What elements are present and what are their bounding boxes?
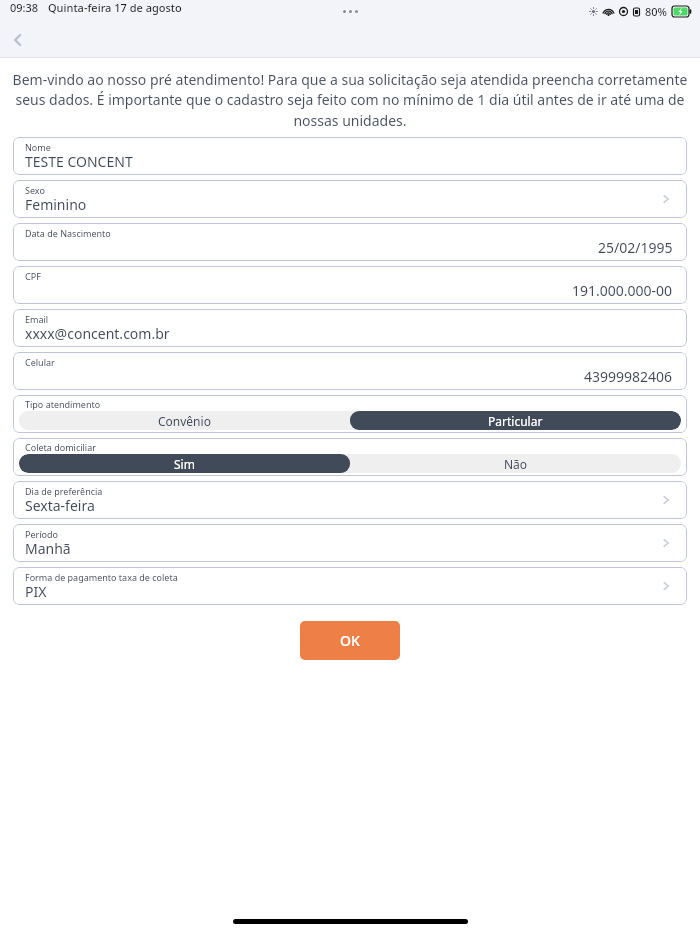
staticText: Celular [25,356,55,368]
staticText: Coleta domiciliar [25,441,96,453]
staticText: 191.000.000-00 [572,281,673,300]
staticText: Dia de preferência [25,485,103,497]
staticText: Nome [25,141,51,153]
staticText: 80% [645,4,667,19]
button[interactable]: Período [13,524,687,562]
staticText: Quinta-feira 17 de agosto [48,0,182,15]
staticText: Sim [174,456,195,472]
staticText: PIX [25,582,47,601]
button[interactable]: Nome [13,137,687,175]
staticText: Período [25,528,58,540]
staticText: Não [504,456,528,472]
button[interactable]: Data de Nascimento [13,223,687,261]
staticText: Tipo atendimento [25,398,101,410]
staticText: Particular [488,413,543,429]
staticText: 25/02/1995 [598,238,673,257]
button[interactable]: Celular [13,352,687,390]
button[interactable]: OK [300,621,400,660]
staticText: Convênio [158,413,211,429]
staticText: Manhã [25,539,71,558]
staticText: xxxx@concent.com.br [25,324,170,343]
button[interactable]: CPF [13,266,687,304]
button[interactable]: Email [13,309,687,347]
button[interactable]: Não [350,454,681,473]
staticText: Sexo [25,184,45,196]
staticText: Feminino [25,195,87,214]
staticText: TESTE CONCENT [25,152,133,171]
staticText: Email [25,313,49,325]
staticText: Data de Nascimento [25,227,111,239]
staticText: Sexta-feira [25,496,95,515]
button[interactable]: Forma de pagamento taxa de coleta [13,567,687,605]
button[interactable]: Sexo [13,180,687,218]
staticText: 09:38 [10,0,39,15]
button[interactable]: Dia de preferência [13,481,687,519]
button[interactable]: Convênio [19,411,350,430]
button[interactable]: Sim [19,454,350,473]
button[interactable]: Particular [350,411,681,430]
button[interactable]: Back [0,22,36,58]
staticText: CPF [25,270,41,282]
staticText: 43999982406 [584,367,673,386]
staticText: OK [340,631,360,650]
staticText: Forma de pagamento taxa de coleta [25,571,178,583]
staticText: Bem-vindo ao nosso pré atendimento! Para… [10,70,690,131]
